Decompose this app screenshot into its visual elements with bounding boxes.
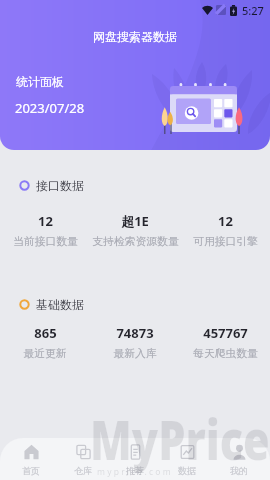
button[interactable]: 超1E xyxy=(90,212,180,249)
button[interactable]: Data xyxy=(161,438,213,480)
staticText: m y p r i c e . c o m xyxy=(97,466,171,478)
button[interactable]: 74873 xyxy=(90,324,180,361)
staticText: 2023/07/28 xyxy=(15,99,85,117)
staticText: 仓库 xyxy=(74,465,92,476)
staticText: 最新入库 xyxy=(113,347,157,361)
staticText: 支持检索资源数量 xyxy=(92,235,179,249)
staticText: MyPrice xyxy=(90,400,270,476)
staticText: 865 xyxy=(34,324,57,342)
staticText: 数据 xyxy=(178,465,196,476)
staticText: 12 xyxy=(218,212,233,230)
staticText: 网盘搜索器数据 xyxy=(93,29,177,44)
button[interactable]: 865 xyxy=(0,324,90,361)
staticText: 5:27 xyxy=(242,3,264,18)
staticText: 推荐 xyxy=(126,465,144,476)
staticText: 每天爬虫数量 xyxy=(193,347,258,361)
button[interactable]: Recommend xyxy=(109,438,161,480)
staticText: 统计面板 xyxy=(16,74,64,89)
staticText: 457767 xyxy=(203,324,248,342)
button[interactable]: 基础数据 xyxy=(0,296,270,312)
button[interactable]: 457767 xyxy=(180,324,270,361)
button[interactable]: 12 xyxy=(180,212,270,249)
button[interactable]: Warehouse xyxy=(57,438,109,480)
button[interactable]: 接口数据 xyxy=(0,177,270,193)
button[interactable]: 12 xyxy=(0,212,90,249)
staticText: 74873 xyxy=(116,324,154,342)
staticText: 我的 xyxy=(230,465,248,476)
staticText: 基础数据 xyxy=(36,297,84,312)
staticText: 超1E xyxy=(121,212,149,230)
staticText: 可用接口引擎 xyxy=(193,235,258,249)
staticText: 12 xyxy=(38,212,53,230)
staticText: 最近更新 xyxy=(23,347,67,361)
button[interactable]: Profile xyxy=(213,438,265,480)
staticText: 当前接口数量 xyxy=(13,235,78,249)
staticText: 接口数据 xyxy=(36,178,84,193)
button[interactable]: Home xyxy=(5,438,57,480)
staticText: 首页 xyxy=(22,465,40,476)
